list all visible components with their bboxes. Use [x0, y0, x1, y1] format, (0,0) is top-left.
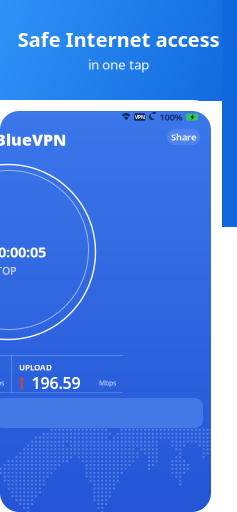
staticText: Mbps — [99, 378, 116, 387]
staticText: Share — [171, 131, 196, 143]
button[interactable]: STOP — [0, 263, 17, 278]
staticText: 100% — [159, 111, 182, 123]
staticText: BlueVPN — [0, 129, 66, 150]
staticText: Safe Internet access — [17, 26, 219, 53]
staticText: STOP — [0, 263, 17, 278]
button[interactable]: Share — [167, 129, 200, 145]
staticText: 00:00:05 — [0, 242, 46, 261]
staticText: UPLOAD — [19, 362, 52, 373]
staticText: VPN — [135, 113, 145, 121]
staticText: Mbps — [0, 378, 4, 387]
staticText: 196.59 — [31, 372, 80, 393]
staticText: in one tap — [88, 56, 149, 73]
